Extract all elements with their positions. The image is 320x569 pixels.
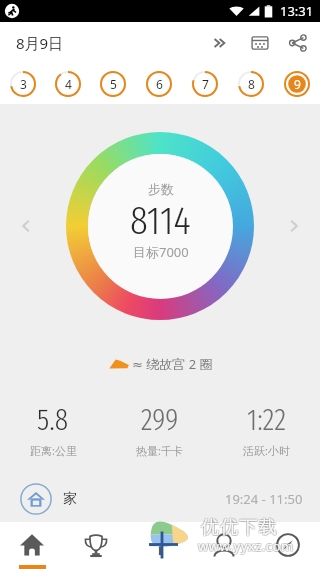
staticText: www.yyxz.com	[198, 536, 294, 554]
staticText: 步数	[148, 181, 174, 197]
staticText: www.yyxz.com	[198, 538, 294, 556]
staticText: 家	[63, 490, 77, 508]
staticText: 5.8	[37, 402, 69, 438]
staticText: 优优下载	[200, 516, 277, 539]
button[interactable]: Next day	[282, 214, 306, 238]
button[interactable]: 5	[90, 64, 136, 104]
staticText: 7	[202, 76, 209, 92]
staticText: 活跃:小时	[243, 443, 290, 458]
button[interactable]: Fast forward	[200, 23, 240, 63]
button[interactable]: 5.8	[0, 402, 106, 458]
staticText: 优优下载	[200, 515, 277, 538]
staticText: 优优下载	[202, 516, 279, 539]
staticText: www.yyxz.com	[197, 536, 293, 554]
staticText: 5	[110, 76, 117, 92]
button[interactable]: 6	[136, 64, 182, 104]
button[interactable]: 4	[45, 64, 90, 104]
staticText: www.yyxz.com	[197, 538, 293, 556]
button[interactable]: 1:22	[213, 402, 320, 458]
staticText: 4	[65, 76, 72, 92]
button[interactable]: Discover	[256, 522, 320, 569]
staticText: 目标7000	[133, 243, 189, 261]
staticText: 13:31	[280, 2, 314, 20]
staticText: 优优下载	[202, 515, 279, 538]
button[interactable]: Calendar	[240, 23, 280, 63]
staticText: 8月9日	[16, 33, 64, 53]
staticText: www.yyxz.com	[199, 538, 295, 556]
button[interactable]: 8	[228, 64, 274, 104]
button[interactable]: Achievements	[64, 522, 128, 569]
staticText: 8114	[130, 197, 191, 245]
staticText: 299	[141, 402, 179, 438]
staticText: 热量:千卡	[136, 443, 183, 458]
staticText: www.yyxz.com	[198, 537, 294, 555]
staticText: 1:22	[247, 402, 286, 438]
button[interactable]: ≈ 绕故宫 2 圈	[0, 352, 320, 376]
staticText: www.yyxz.com	[199, 537, 295, 555]
staticText: 6	[156, 76, 163, 92]
staticText: 优优下载	[201, 517, 278, 540]
staticText: www.yyxz.com	[197, 537, 293, 555]
staticText: 8	[248, 76, 255, 92]
button[interactable]: Profile	[192, 522, 256, 569]
staticText: ≈ 绕故宫 2 圈	[132, 355, 213, 373]
staticText: 优优下载	[201, 516, 278, 539]
staticText: 优优下载	[202, 517, 279, 540]
button[interactable]: 3	[0, 64, 45, 104]
staticText: 距离:公里	[30, 443, 77, 458]
staticText: 3	[20, 76, 27, 92]
staticText: 9	[294, 76, 301, 92]
staticText: 19:24 - 11:50	[225, 490, 303, 508]
button[interactable]: 299	[106, 402, 213, 458]
button[interactable]: Add	[128, 522, 192, 569]
staticText: 优优下载	[201, 515, 278, 538]
button[interactable]: 9	[274, 64, 320, 104]
button[interactable]: 7	[182, 64, 228, 104]
button[interactable]: 家	[20, 477, 303, 521]
button[interactable]: Share	[280, 23, 316, 63]
button[interactable]: Home	[0, 522, 64, 569]
staticText: 优优下载	[200, 517, 277, 540]
staticText: www.yyxz.com	[199, 536, 295, 554]
button[interactable]: Previous day	[14, 214, 38, 238]
